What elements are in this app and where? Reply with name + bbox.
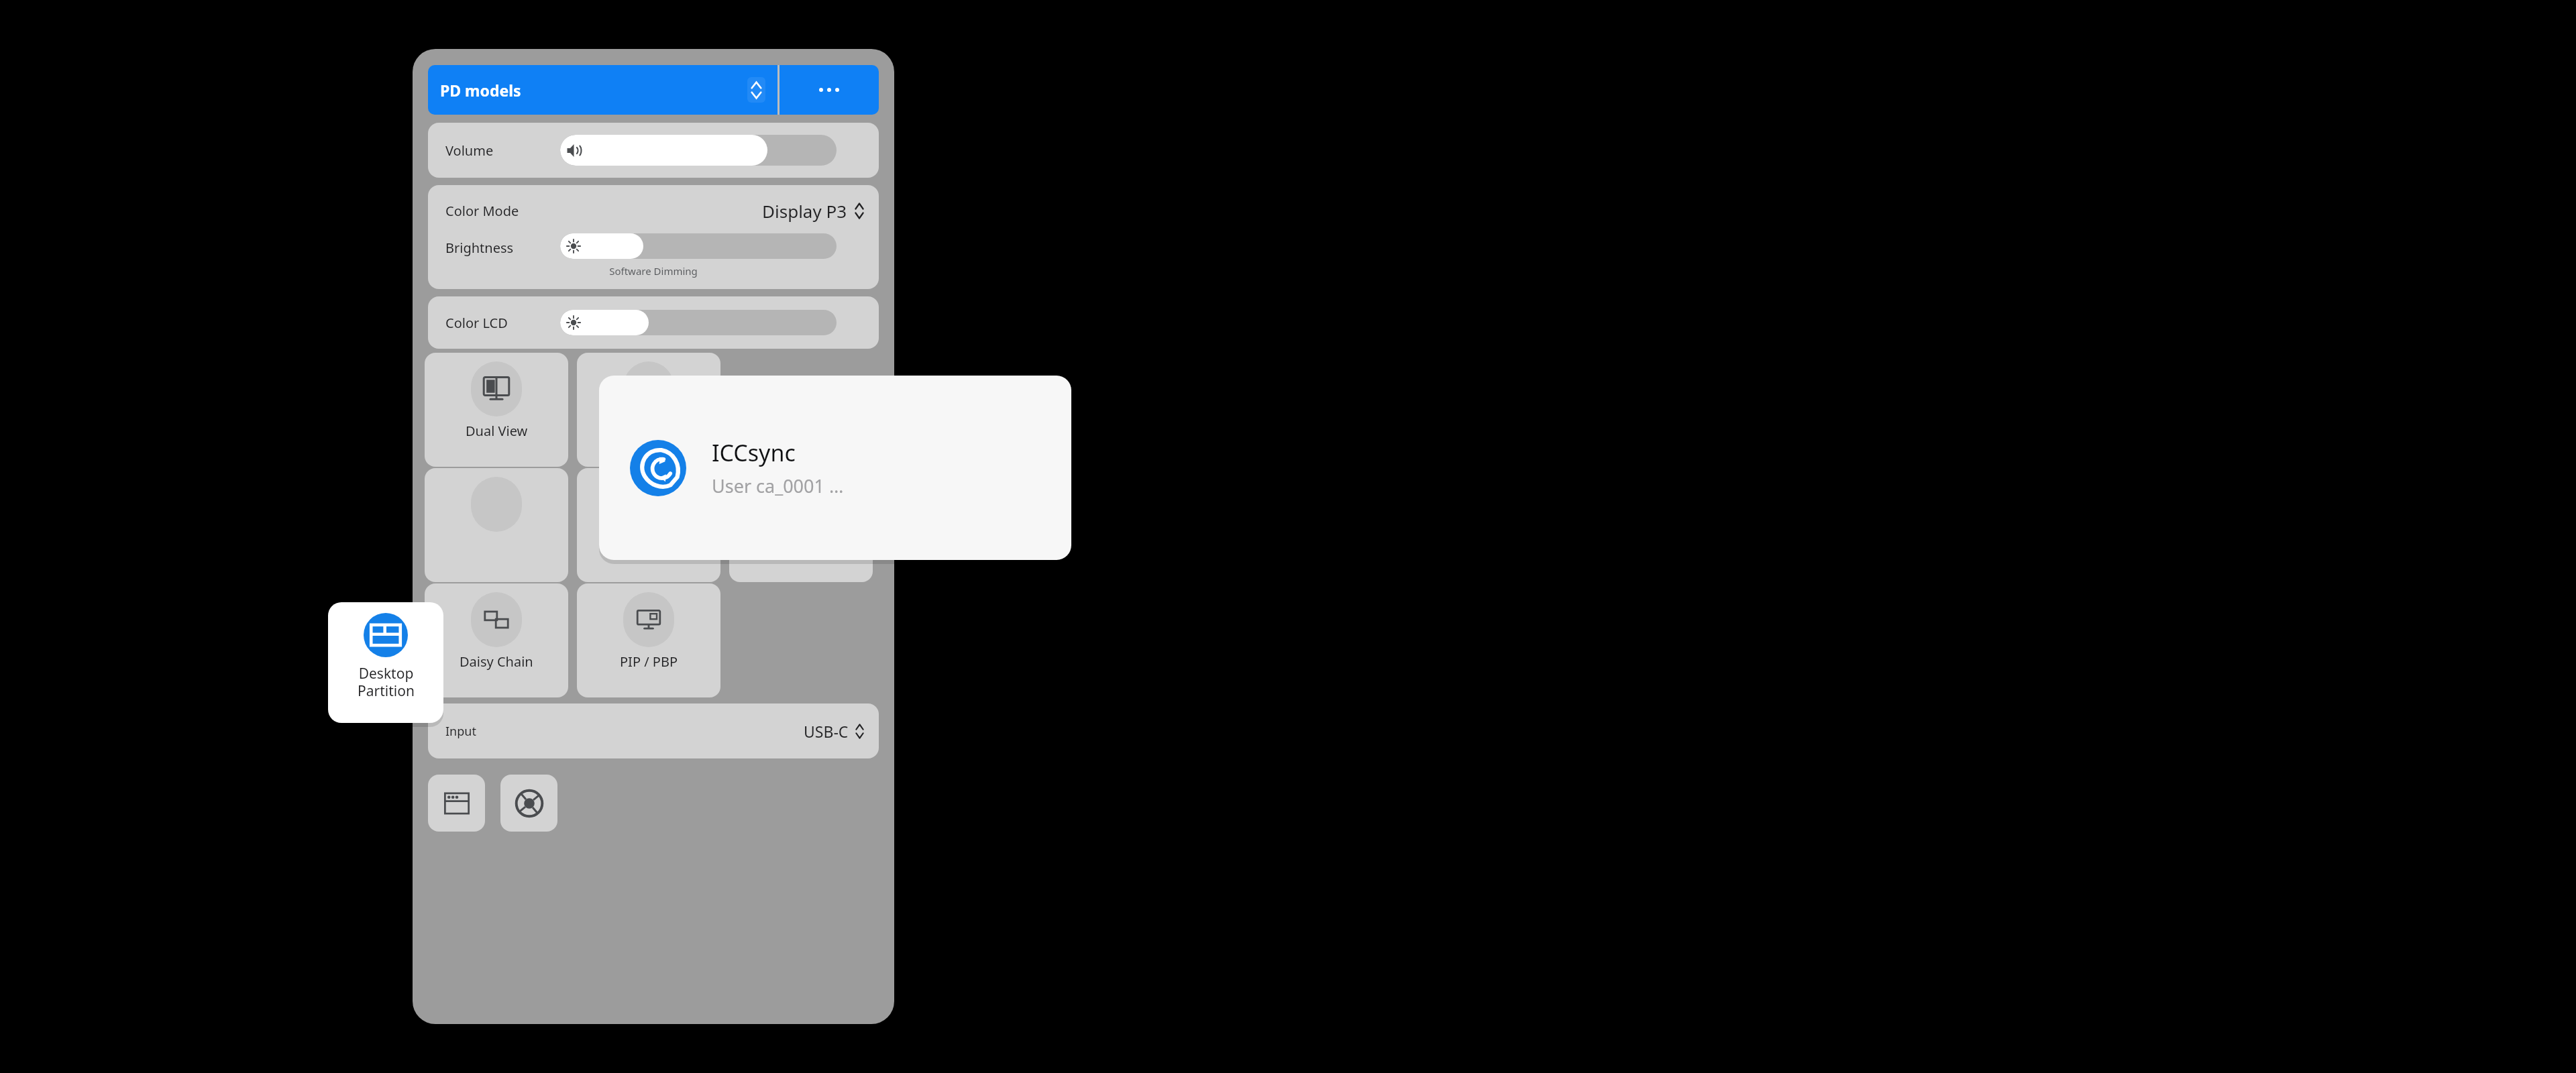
button[interactable]: PIP PBP [577, 583, 720, 697]
staticText: PD models [440, 80, 521, 101]
staticText: Desktop Partition [358, 664, 415, 700]
button[interactable]: Desktop Partition [328, 602, 443, 723]
staticText: Volume [445, 142, 494, 160]
staticText: PIP / PBP [620, 653, 678, 671]
button[interactable]: Volume [428, 123, 879, 178]
button[interactable]: Feature [577, 353, 720, 467]
staticText: Input [445, 723, 476, 740]
button[interactable]: Dual View [425, 353, 568, 467]
button[interactable]: ICCsync [599, 376, 1071, 560]
button[interactable]: Color Mode [428, 193, 879, 228]
button[interactable]: Feature [425, 468, 568, 582]
staticText: User ca_0001 … [712, 473, 844, 498]
staticText: Color LCD [445, 314, 508, 332]
staticText: ICCsync [712, 437, 796, 468]
staticText: USB-C [804, 721, 849, 742]
button[interactable] [560, 135, 837, 166]
button[interactable]: Window layout [428, 775, 485, 832]
staticText: Brightness [445, 239, 514, 257]
button[interactable]: Color LCD [428, 296, 879, 349]
button[interactable] [560, 233, 837, 259]
button[interactable]: Daisy Chain [425, 583, 568, 697]
staticText: Daisy Chain [460, 653, 533, 671]
button[interactable]: Print Assist [729, 468, 873, 582]
staticText: Display P3 [762, 199, 847, 223]
button[interactable]: Input [428, 703, 879, 758]
button[interactable]: More options [780, 65, 879, 115]
button[interactable]: Auto Pivot [577, 468, 720, 582]
button[interactable]: Color wheel [500, 775, 557, 832]
button[interactable]: PD models [428, 65, 777, 115]
staticText: Software Dimming [428, 264, 879, 278]
staticText: Color Mode [445, 202, 519, 220]
staticText: Dual View [466, 422, 528, 440]
button[interactable] [560, 310, 837, 335]
